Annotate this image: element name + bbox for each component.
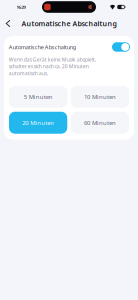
- button[interactable]: Zurück: [0, 14, 16, 33]
- staticText: Automatische Abschaltung: [21, 19, 116, 28]
- button[interactable]: Automatische Abschaltung: [4, 40, 134, 54]
- staticText: 20 Minuten: [22, 119, 54, 127]
- button[interactable]: 5 Minuten: [9, 86, 67, 108]
- button[interactable]: 20 Minuten: [9, 112, 67, 134]
- staticText: 5 Minuten: [24, 93, 53, 101]
- staticText: 10 Minuten: [84, 93, 116, 101]
- staticText: Automatische Abschaltung: [9, 43, 76, 51]
- staticText: 16:29: [16, 4, 25, 10]
- staticText: 60 Minuten: [84, 119, 116, 127]
- button[interactable]: 60 Minuten: [71, 112, 129, 134]
- button[interactable]: 10 Minuten: [71, 86, 129, 108]
- staticText: Wenn das Gerät keine Musik abspielt, sch…: [9, 56, 96, 77]
